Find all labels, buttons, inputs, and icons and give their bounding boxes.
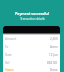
button[interactable]: Date [3, 51, 60, 59]
button[interactable]: Status [3, 67, 60, 72]
staticText: To [5, 45, 9, 49]
staticText: Date [5, 53, 12, 57]
staticText: Amount [5, 37, 17, 41]
staticText: Done [50, 68, 58, 72]
staticText: Acme [50, 45, 58, 49]
staticText: 12 Jun [49, 53, 58, 57]
staticText: Payment successful [15, 11, 49, 16]
button[interactable]: To [3, 43, 60, 51]
staticText: Status [5, 68, 14, 72]
button[interactable]: Amount [3, 35, 60, 43]
staticText: Ref [5, 61, 10, 65]
staticText: Transaction details [20, 17, 45, 21]
staticText: 2,450 [50, 37, 58, 41]
button[interactable]: Ref [3, 59, 60, 67]
staticText: 884120 [47, 61, 58, 65]
